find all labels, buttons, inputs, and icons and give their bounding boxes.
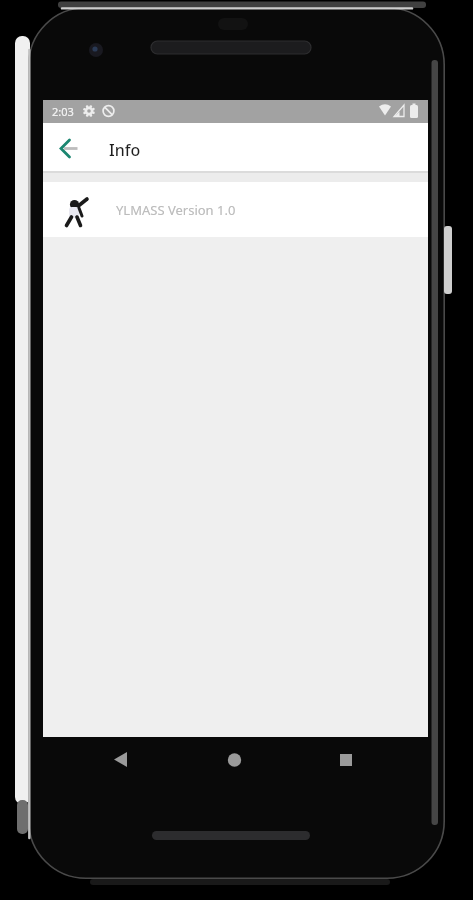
staticText: Info [109,139,141,161]
button[interactable] [214,742,256,778]
button[interactable] [43,181,428,237]
button[interactable] [325,742,367,778]
staticText: YLMASS Version 1.0 [116,201,236,219]
button[interactable] [48,127,88,167]
staticText: 2:03 [52,104,74,119]
button[interactable] [100,742,142,778]
